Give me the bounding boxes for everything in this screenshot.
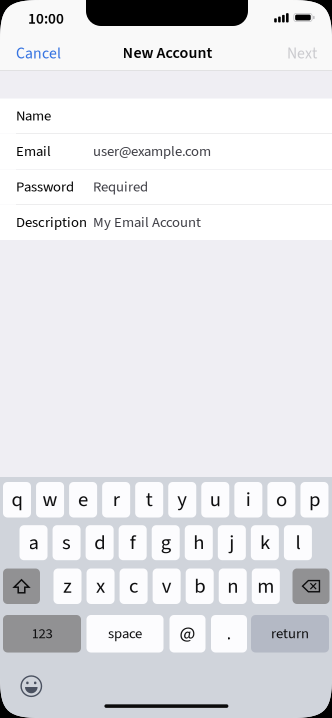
staticText: Description (16, 212, 87, 233)
staticText: g (161, 528, 171, 557)
staticText: @ (179, 620, 195, 647)
staticText: My Email Account (93, 212, 201, 233)
staticText: u (210, 485, 221, 514)
button[interactable]: m (252, 568, 280, 604)
button[interactable]: space (86, 615, 163, 652)
button[interactable]: x (86, 568, 114, 604)
button[interactable]: Description (0, 205, 332, 240)
staticText: i (246, 485, 251, 514)
button[interactable]: Name (0, 98, 332, 133)
button[interactable]: @ (169, 615, 205, 652)
staticText: . (226, 620, 231, 647)
staticText: y (177, 485, 187, 514)
button[interactable]: z (53, 568, 81, 604)
button[interactable]: Delete (292, 568, 329, 604)
button[interactable]: f (119, 525, 147, 560)
button[interactable]: g (152, 525, 180, 560)
staticText: t (146, 485, 153, 514)
staticText: z (63, 571, 72, 601)
staticText: h (193, 528, 204, 557)
button[interactable]: h (185, 525, 213, 560)
staticText: k (260, 528, 270, 557)
button[interactable]: Email (0, 134, 332, 169)
staticText: 123 (31, 623, 52, 644)
button[interactable]: return (251, 615, 329, 652)
button[interactable]: Password (0, 169, 332, 204)
staticText: a (28, 528, 38, 557)
button[interactable]: b (186, 568, 214, 604)
button[interactable]: a (19, 525, 47, 560)
staticText: New Account (122, 42, 212, 64)
staticText: q (11, 485, 22, 514)
staticText: w (42, 485, 57, 514)
staticText: Next (287, 42, 317, 65)
button[interactable]: q (3, 482, 31, 517)
staticText: Password (16, 177, 74, 197)
staticText: r (113, 485, 120, 514)
button[interactable]: c (120, 568, 148, 604)
staticText: Name (16, 106, 51, 126)
button[interactable]: j (218, 525, 246, 560)
staticText: user@example.com (93, 141, 211, 162)
staticText: space (108, 623, 142, 644)
button[interactable]: 123 (3, 615, 81, 652)
button[interactable]: d (86, 525, 114, 560)
button[interactable]: . (211, 615, 247, 652)
staticText: f (130, 528, 136, 557)
staticText: p (309, 485, 320, 514)
staticText: c (129, 571, 138, 601)
staticText: x (96, 571, 105, 601)
button[interactable]: u (201, 482, 229, 517)
staticText: return (271, 623, 309, 644)
button[interactable]: Cancel (0, 36, 78, 71)
button[interactable]: y (168, 482, 196, 517)
staticText: j (229, 528, 234, 557)
button[interactable]: l (284, 525, 312, 560)
staticText: Required (93, 177, 148, 197)
button[interactable]: p (300, 482, 328, 517)
button[interactable]: v (153, 568, 181, 604)
button[interactable]: r (102, 482, 130, 517)
staticText: b (194, 571, 205, 601)
staticText: Email (16, 141, 51, 162)
button[interactable]: s (53, 525, 81, 560)
button[interactable]: Next (257, 36, 332, 71)
staticText: d (94, 528, 105, 557)
button[interactable]: o (267, 482, 295, 517)
staticText: m (257, 571, 274, 601)
button[interactable]: i (234, 482, 262, 517)
button[interactable]: Shift (3, 568, 40, 604)
staticText: 10:00 (28, 8, 64, 30)
staticText: s (62, 528, 71, 557)
staticText: Cancel (16, 42, 61, 65)
button[interactable]: k (251, 525, 279, 560)
staticText: o (276, 485, 287, 514)
button[interactable]: w (36, 482, 64, 517)
staticText: n (227, 571, 238, 601)
staticText: e (78, 485, 88, 514)
button[interactable]: Emoji (20, 675, 42, 697)
button[interactable]: n (219, 568, 247, 604)
button[interactable]: e (69, 482, 97, 517)
staticText: v (162, 571, 172, 601)
button[interactable]: t (135, 482, 163, 517)
staticText: l (295, 528, 300, 557)
